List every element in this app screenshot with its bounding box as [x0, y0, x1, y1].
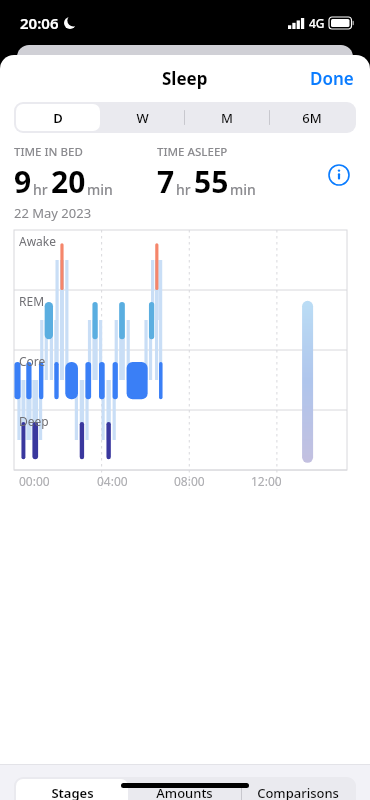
button[interactable]: Stages [16, 779, 128, 800]
staticText: min [230, 180, 256, 199]
staticText: 20:06 [20, 13, 59, 33]
staticText: Stages [51, 784, 94, 800]
staticText: 12:00 [251, 473, 282, 489]
staticText: TIME ASLEEP [157, 144, 228, 160]
staticText: min [87, 180, 113, 199]
staticText: 6M [302, 109, 322, 127]
staticText: Comparisons [257, 784, 339, 800]
staticText: 7 [157, 161, 175, 202]
button[interactable]: M [184, 104, 269, 131]
staticText: 20 [51, 161, 86, 202]
staticText: 22 May 2023 [14, 204, 92, 222]
staticText: Core [19, 353, 46, 369]
staticText: 08:00 [174, 473, 205, 489]
staticText: Done [310, 67, 354, 90]
staticText: 4G [309, 15, 325, 31]
staticText: Deep [19, 413, 49, 429]
staticText: 55 [194, 161, 229, 202]
staticText: W [136, 109, 149, 127]
staticText: hr [33, 180, 48, 199]
button[interactable]: Comparisons [241, 779, 354, 800]
button[interactable]: Amounts [128, 779, 241, 800]
staticText: 04:00 [97, 473, 128, 489]
button[interactable]: D [16, 104, 100, 131]
button[interactable]: 6M [269, 104, 354, 131]
staticText: REM [19, 293, 45, 309]
staticText: D [53, 109, 63, 127]
staticText: Sleep [162, 67, 208, 90]
staticText: 9 [14, 161, 32, 202]
staticText: Amounts [156, 784, 213, 800]
staticText: Awake [19, 233, 57, 249]
staticText: 00:00 [19, 473, 50, 489]
button[interactable]: Done [294, 59, 370, 98]
button[interactable]: W [100, 104, 184, 131]
staticText: hr [176, 180, 191, 199]
button[interactable]: About sleep data [322, 158, 356, 192]
staticText: M [221, 109, 233, 127]
staticText: TIME IN BED [14, 144, 83, 160]
